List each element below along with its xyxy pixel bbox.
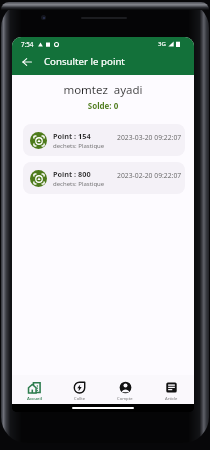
staticText: Compte — [117, 396, 133, 402]
staticText: dechets: Plastique — [53, 142, 105, 150]
staticText: Solde: 0 — [12, 100, 194, 111]
button[interactable]: Collte — [57, 375, 102, 404]
staticText: Point : 800 — [53, 169, 91, 179]
staticText: Consulter le point — [44, 55, 125, 68]
staticText: dechets: Plastique — [53, 180, 105, 188]
staticText: Article — [165, 396, 178, 402]
staticText: Point : 154 — [53, 131, 91, 141]
button[interactable]: Point : 154 — [23, 124, 185, 156]
button[interactable]: Back — [15, 51, 38, 72]
staticText: momtez ayadi — [12, 82, 194, 98]
staticText: 7:54 — [21, 40, 34, 48]
button[interactable]: Accueil — [12, 375, 57, 404]
staticText: 2023-03-20 09:22:07 — [117, 133, 182, 142]
staticText: 3G — [158, 40, 166, 48]
button[interactable]: Compte — [102, 375, 148, 404]
staticText: 2023-02-20 09:22:07 — [117, 171, 182, 180]
staticText: Collte — [74, 396, 86, 402]
button[interactable]: Point : 800 — [23, 162, 185, 194]
staticText: Accueil — [27, 396, 42, 402]
button[interactable]: Article — [148, 375, 194, 404]
